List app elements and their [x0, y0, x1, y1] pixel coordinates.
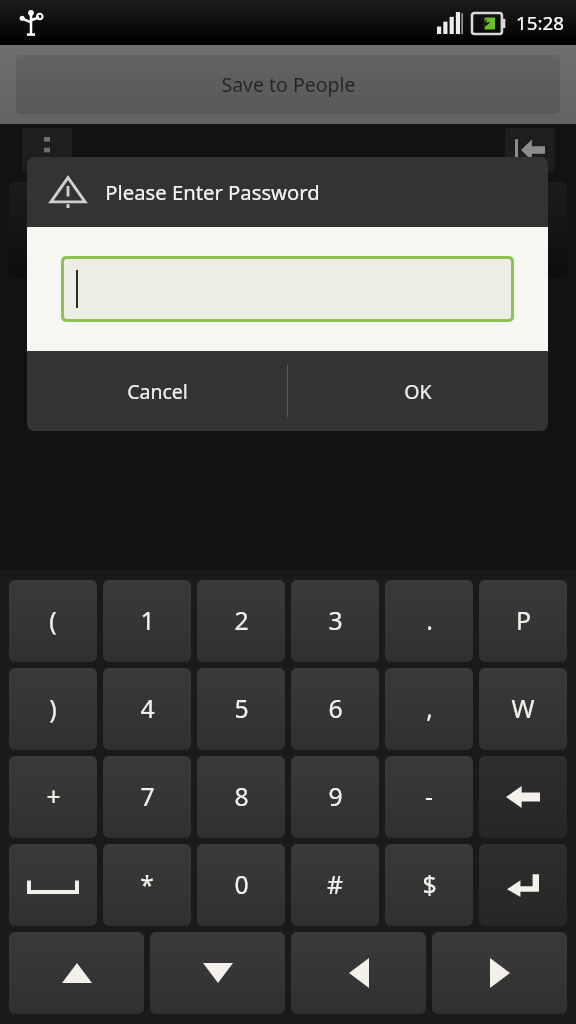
staticText: .	[426, 604, 433, 638]
button[interactable]: Enter	[479, 844, 567, 926]
button[interactable]: 2	[198, 182, 378, 277]
button[interactable]: Left	[291, 932, 426, 1014]
staticText: Save to People	[221, 71, 356, 98]
staticText: ,	[426, 692, 433, 726]
staticText: 9	[328, 780, 343, 814]
button[interactable]: Down	[150, 932, 285, 1014]
button[interactable]: #	[291, 844, 379, 926]
staticText: -	[425, 780, 433, 814]
button[interactable]: Up	[9, 932, 144, 1014]
staticText: 4	[140, 692, 155, 726]
button[interactable]: OK	[288, 351, 548, 431]
button[interactable]: 8	[197, 756, 285, 838]
staticText: 15:28	[516, 10, 564, 36]
staticText: *	[140, 868, 154, 902]
button[interactable]: -	[385, 756, 473, 838]
button[interactable]: 2	[197, 580, 285, 662]
button[interactable]: More options	[22, 128, 72, 172]
button[interactable]: 6	[291, 668, 379, 750]
button[interactable]: ,	[385, 668, 473, 750]
button[interactable]: (	[9, 580, 97, 662]
staticText: 3	[468, 188, 486, 229]
staticText: 6	[328, 692, 343, 726]
button[interactable]: 0	[197, 844, 285, 926]
button[interactable]: 9	[291, 756, 379, 838]
button[interactable]: Backspace	[479, 756, 567, 838]
button[interactable]: P	[479, 580, 567, 662]
staticText: OK	[404, 378, 432, 405]
button[interactable]	[64, 259, 511, 319]
button[interactable]: 1	[103, 580, 191, 662]
staticText: )	[49, 692, 57, 726]
button[interactable]: 1	[9, 182, 189, 277]
staticText: 0	[234, 868, 249, 902]
button[interactable]: +	[9, 756, 97, 838]
button[interactable]: 5	[197, 668, 285, 750]
button[interactable]: Backspace	[505, 128, 555, 172]
staticText: 3	[328, 604, 343, 638]
staticText: 8	[234, 780, 249, 814]
staticText: 7	[140, 780, 155, 814]
staticText: #	[327, 868, 343, 902]
button[interactable]: W	[479, 668, 567, 750]
staticText: 1	[140, 604, 155, 638]
staticText: 2	[234, 604, 249, 638]
staticText: 5	[234, 692, 249, 726]
staticText: 1	[90, 188, 108, 229]
staticText: Please Enter Password	[105, 178, 320, 206]
button[interactable]: .	[385, 580, 473, 662]
button[interactable]: )	[9, 668, 97, 750]
button[interactable]: Space	[9, 844, 97, 926]
button[interactable]: Cancel	[27, 351, 287, 431]
staticText: $	[422, 868, 437, 902]
button[interactable]: 7	[103, 756, 191, 838]
staticText: P	[516, 604, 531, 638]
button[interactable]: *	[103, 844, 191, 926]
staticText: W	[511, 692, 535, 726]
staticText: Cancel	[127, 378, 188, 405]
staticText: +	[46, 780, 61, 814]
button[interactable]: 4	[103, 668, 191, 750]
staticText: (	[49, 604, 57, 638]
button[interactable]: 3	[387, 182, 567, 277]
button[interactable]: $	[385, 844, 473, 926]
button[interactable]: Right	[432, 932, 567, 1014]
button[interactable]: Save to People	[16, 55, 560, 114]
staticText: 2	[279, 188, 297, 229]
button[interactable]: 3	[291, 580, 379, 662]
